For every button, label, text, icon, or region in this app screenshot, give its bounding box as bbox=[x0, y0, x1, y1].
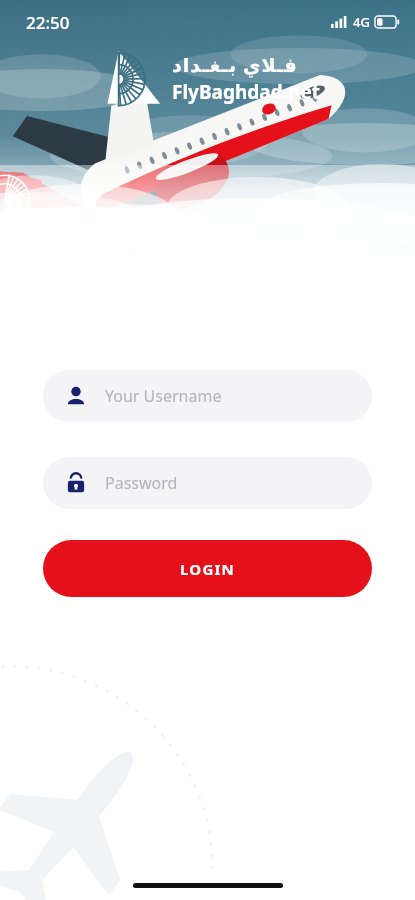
staticText: Your Username bbox=[105, 385, 222, 407]
staticText: LOGIN bbox=[180, 559, 235, 579]
staticText: Password bbox=[105, 472, 178, 494]
staticText: 4G bbox=[353, 13, 370, 31]
other: Username bbox=[65, 385, 87, 407]
staticText: فـلاي بـغـداد bbox=[172, 52, 298, 78]
other: Password bbox=[65, 472, 87, 494]
button[interactable]: LOGIN bbox=[43, 540, 372, 597]
button[interactable]: Password bbox=[43, 457, 372, 509]
staticText: FlyBaghdad.net bbox=[172, 79, 320, 105]
staticText: 22:50 bbox=[26, 11, 70, 34]
button[interactable]: Username bbox=[43, 370, 372, 422]
